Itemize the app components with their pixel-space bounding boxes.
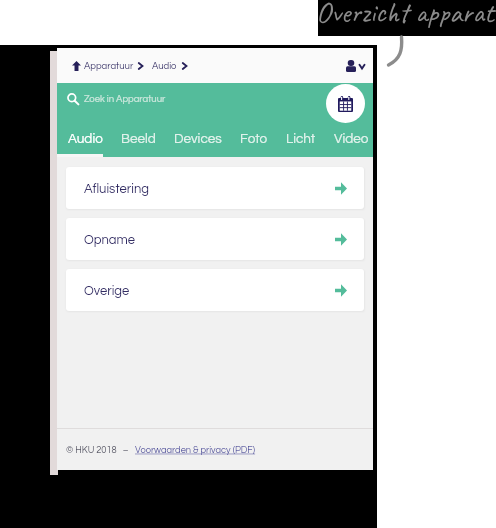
staticText: Overzicht apparatuur <box>316 0 496 31</box>
staticText: Zoek in Apparatuur <box>84 94 166 104</box>
button[interactable]: Apparatuur <box>72 61 143 71</box>
button[interactable]: Audio <box>67 132 120 157</box>
button[interactable]: Calendar <box>326 84 365 123</box>
staticText: Devices <box>174 132 222 146</box>
button[interactable]: Voorwaarden & privacy (PDF) <box>135 445 256 455</box>
button[interactable]: Opname <box>66 218 364 260</box>
button[interactable]: Beeld <box>120 132 173 157</box>
staticText: Licht <box>286 132 316 146</box>
button[interactable]: Devices <box>173 132 239 157</box>
button[interactable]: Afluistering <box>66 167 364 209</box>
other: Search <box>67 93 79 105</box>
staticText: Afluistering <box>84 182 149 195</box>
staticText: Beeld <box>121 132 156 146</box>
button[interactable]: Account menu <box>346 60 365 72</box>
staticText: Audio <box>68 132 103 146</box>
button[interactable]: Overige <box>66 269 364 311</box>
staticText: Video <box>334 132 369 146</box>
staticText: Audio <box>152 61 177 71</box>
staticText: © HKU 2018 – <box>66 445 135 455</box>
button[interactable]: Licht <box>285 132 333 157</box>
button[interactable]: Video <box>333 132 369 157</box>
staticText: Opname <box>84 233 136 246</box>
staticText: Foto <box>240 132 268 146</box>
staticText: Overige <box>84 284 130 297</box>
button[interactable]: Foto <box>239 132 285 157</box>
staticText: Apparatuur <box>84 61 134 71</box>
button[interactable]: Audio <box>152 61 187 71</box>
